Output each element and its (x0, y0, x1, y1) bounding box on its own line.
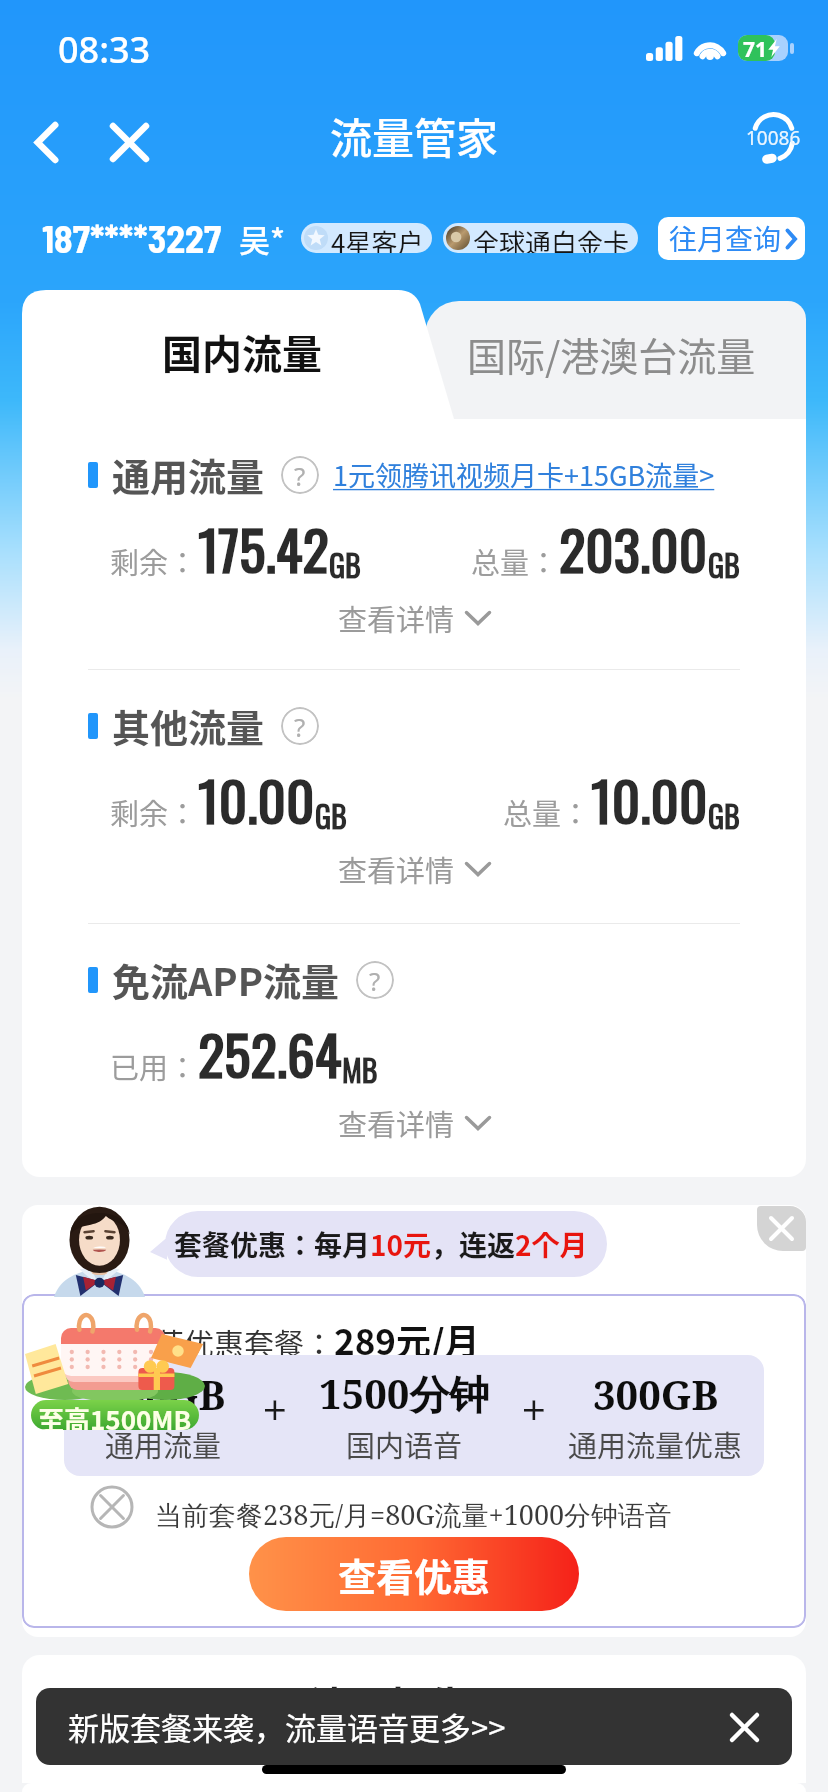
staticText: 新版套餐来袭，流量语音更多>> (68, 1704, 506, 1749)
staticText: 已用： (110, 1045, 198, 1087)
staticText: 252.64 (198, 1012, 342, 1094)
button[interactable]: Help (281, 456, 319, 494)
staticText: 总量： (471, 540, 559, 582)
staticText: 剩余： (110, 791, 198, 833)
button[interactable]: Back (10, 106, 82, 178)
staticText: 通用流量 (112, 447, 265, 502)
staticText: 全球通白金卡 (473, 223, 630, 253)
staticText: ? (294, 709, 306, 744)
staticText: 流量报告 (309, 1675, 469, 1733)
staticText: 吴* (239, 216, 286, 261)
staticText: GB (329, 542, 361, 586)
button[interactable]: Customer service 10086 (738, 102, 808, 172)
button[interactable]: Close recommendation (90, 1485, 134, 1529)
staticText: 剩余： (110, 540, 198, 582)
staticText: 08:33 (58, 25, 151, 74)
staticText: 71 (743, 35, 768, 61)
staticText: 总量： (503, 791, 591, 833)
button[interactable]: 1元领腾讯视频月卡+15GB流量> (333, 455, 715, 494)
button[interactable]: 查看详情 (334, 1098, 495, 1148)
staticText: 查看优惠 (338, 1547, 491, 1602)
staticText: 203.00 (559, 507, 708, 589)
staticText: 查看详情 (338, 1102, 455, 1144)
staticText: ? (369, 963, 381, 998)
staticText: 当前套餐238元/月=80G流量+1000分钟语音 (155, 1496, 673, 1533)
button[interactable]: 国际/港澳台流量 (425, 301, 806, 419)
staticText: 国际/港澳台流量 (467, 326, 756, 382)
staticText: MB (342, 1047, 378, 1091)
staticText: 10.00 (591, 758, 708, 840)
staticText: GB (315, 793, 347, 837)
staticText: 套餐优惠：每月10元，连返2个月 (174, 1224, 588, 1265)
staticText: 10086 (746, 125, 801, 151)
staticText: GB (708, 793, 740, 837)
button[interactable]: Close promo (757, 1206, 806, 1251)
staticText: 通用流量优惠 (568, 1423, 743, 1465)
staticText: + (521, 1378, 547, 1441)
staticText: 至高1500MB (38, 1400, 192, 1430)
staticText: 查看详情 (338, 848, 455, 890)
staticText: 为您推荐优惠套餐：289元/月 (64, 1314, 480, 1365)
staticText: 175.42 (198, 507, 329, 589)
button[interactable]: Help (356, 961, 394, 999)
button[interactable]: Close (93, 106, 165, 178)
button[interactable]: 查看详情 (334, 844, 495, 894)
staticText: 200GB (100, 1367, 226, 1421)
staticText: + (262, 1378, 288, 1441)
staticText: 通用流量 (105, 1423, 222, 1465)
button[interactable]: 查看详情 (334, 593, 495, 643)
staticText: 流量管家 (330, 105, 499, 166)
staticText: 187****3227 (42, 215, 222, 261)
staticText: 300GB (593, 1367, 719, 1421)
staticText: 其他流量 (112, 698, 265, 753)
staticText: 查看详情 (338, 597, 455, 639)
button[interactable]: Dismiss (722, 1705, 766, 1749)
staticText: 国内语音 (346, 1423, 463, 1465)
staticText: GB (708, 542, 740, 586)
staticText: 免流APP流量 (112, 952, 340, 1007)
staticText: 国内流量 (162, 323, 322, 381)
button[interactable]: 国内流量 (22, 290, 454, 419)
staticText: 10.00 (198, 758, 315, 840)
button[interactable]: 查看优惠 (249, 1537, 579, 1611)
staticText: ? (294, 458, 306, 493)
staticText: 4星客户 (331, 223, 424, 253)
staticText: 1500分钟 (319, 1366, 490, 1421)
button[interactable]: 往月查询 (658, 217, 805, 260)
button[interactable]: Help (281, 707, 319, 745)
staticText: 往月查询 (669, 218, 782, 259)
